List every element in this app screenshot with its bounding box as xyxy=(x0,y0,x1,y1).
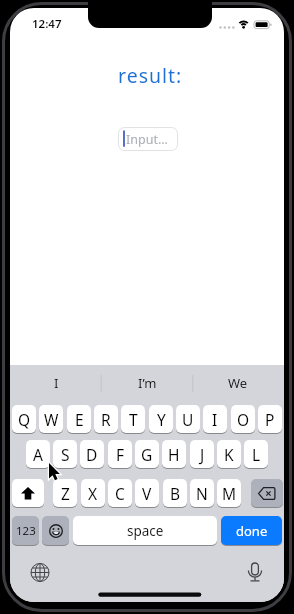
staticText: L xyxy=(252,444,261,465)
staticText: K xyxy=(224,444,234,465)
staticText: 123 xyxy=(16,523,36,539)
staticText: space xyxy=(127,522,164,540)
staticText: I xyxy=(212,409,218,430)
staticText: M xyxy=(222,483,237,504)
staticText: We xyxy=(228,374,248,392)
staticText: C xyxy=(115,483,125,504)
staticText: 12:47 xyxy=(32,16,62,32)
staticText: X xyxy=(88,483,98,504)
staticText: Y xyxy=(157,409,166,430)
staticText: result: xyxy=(118,62,183,86)
staticText: N xyxy=(196,483,208,504)
staticText: I’m xyxy=(138,374,157,392)
staticText: W xyxy=(44,409,59,430)
staticText: done xyxy=(236,522,268,540)
staticText: Input... xyxy=(126,131,168,148)
staticText: A xyxy=(33,444,43,465)
staticText: T xyxy=(129,409,138,430)
staticText: V xyxy=(142,483,152,504)
staticText: H xyxy=(168,444,180,465)
staticText: G xyxy=(141,444,153,465)
staticText: O xyxy=(237,409,250,430)
staticText: P xyxy=(265,409,275,430)
staticText: Z xyxy=(61,483,70,504)
staticText: J xyxy=(200,444,205,465)
staticText: E xyxy=(75,409,84,430)
staticText: Q xyxy=(18,409,31,430)
staticText: D xyxy=(86,444,98,465)
staticText: B xyxy=(170,483,181,504)
staticText: R xyxy=(101,409,111,430)
staticText: S xyxy=(61,444,70,465)
staticText: I xyxy=(54,374,59,392)
staticText: F xyxy=(116,444,125,465)
staticText: U xyxy=(182,409,194,430)
